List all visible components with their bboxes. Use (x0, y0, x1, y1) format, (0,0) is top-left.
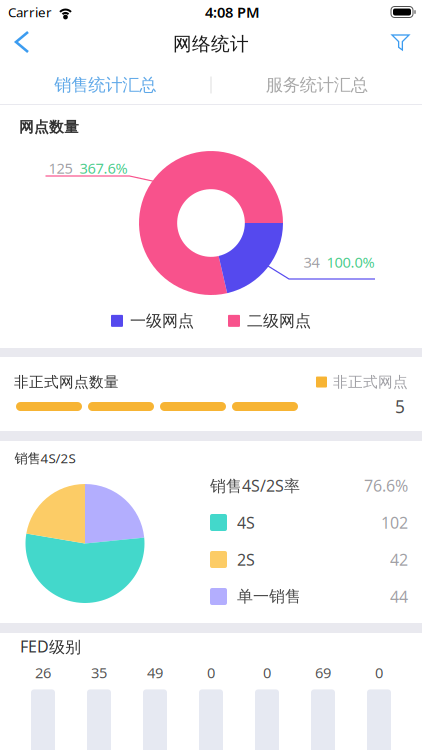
staticText: 0 (263, 663, 271, 682)
staticText: 42 (390, 549, 408, 570)
staticText: 二级网点 (247, 311, 311, 331)
staticText: 单一销售 (237, 587, 301, 606)
staticText: 一级网点 (130, 311, 194, 331)
staticText: 367.6% (79, 158, 127, 178)
staticText: 102 (381, 512, 408, 533)
staticText: 2S (237, 549, 255, 570)
button[interactable]: 销售统计汇总 (0, 66, 210, 104)
staticText: 4:08 PM (205, 2, 260, 22)
staticText: 非正式网点数量 (14, 373, 119, 391)
staticText: 网点数量 (19, 118, 79, 136)
staticText: 销售4S/2S (14, 449, 75, 467)
staticText: 销售4S/2S率 (210, 475, 300, 496)
staticText: 49 (147, 663, 163, 682)
button[interactable]: Filter (374, 26, 422, 64)
staticText: 0 (207, 663, 215, 682)
staticText: 69 (315, 663, 331, 682)
staticText: 35 (91, 663, 107, 682)
staticText: 非正式网点 (333, 373, 408, 391)
button[interactable]: Back (0, 24, 46, 66)
staticText: 34 (303, 252, 319, 272)
staticText: 销售统计汇总 (54, 74, 156, 96)
staticText: 100.0% (326, 252, 374, 272)
staticText: 4S (237, 512, 255, 533)
staticText: 26 (35, 663, 51, 682)
staticText: FED级别 (20, 636, 81, 657)
staticText: 5 (395, 395, 405, 418)
staticText: 44 (390, 586, 408, 607)
staticText: 服务统计汇总 (266, 74, 368, 96)
staticText: 网络统计 (173, 32, 249, 55)
staticText: 0 (375, 663, 383, 682)
staticText: Carrier (8, 3, 52, 21)
button[interactable]: 服务统计汇总 (211, 66, 422, 104)
staticText: 125 (48, 158, 72, 178)
staticText: 76.6% (364, 475, 408, 496)
